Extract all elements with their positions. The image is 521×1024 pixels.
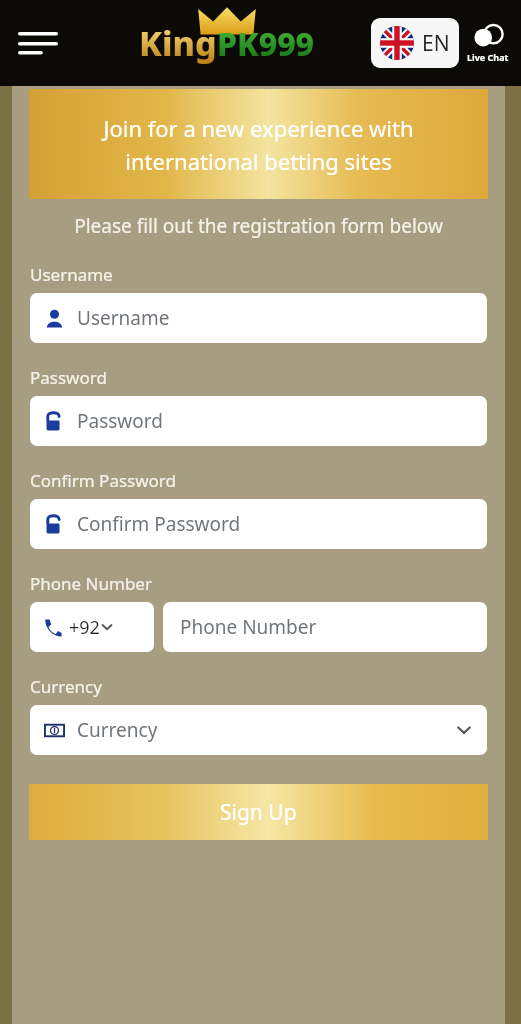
- button[interactable]: +92: [30, 602, 154, 652]
- button[interactable]: Currency: [30, 705, 487, 755]
- staticText: Currency: [77, 717, 158, 743]
- staticText: EN: [422, 29, 450, 58]
- staticText: Phone Number: [180, 614, 317, 640]
- staticText: Username: [30, 263, 113, 286]
- button[interactable]: EN: [371, 18, 459, 68]
- staticText: +92: [69, 615, 100, 640]
- staticText: Live Chat: [467, 51, 509, 63]
- button[interactable]: Live Chat: [467, 23, 509, 63]
- button[interactable]: Username: [30, 293, 487, 343]
- staticText: PK999: [217, 22, 315, 66]
- staticText: Join for a new experience with internati…: [37, 113, 480, 176]
- staticText: Please fill out the registration form be…: [72, 213, 445, 239]
- staticText: Confirm Password: [77, 511, 241, 537]
- button[interactable]: Password: [30, 396, 487, 446]
- staticText: Sign Up: [220, 798, 297, 827]
- staticText: Confirm Password: [30, 469, 176, 492]
- button[interactable]: Phone Number: [163, 602, 487, 652]
- button[interactable]: Confirm Password: [30, 499, 487, 549]
- staticText: Username: [77, 305, 170, 331]
- staticText: Password: [77, 408, 163, 434]
- staticText: King: [139, 20, 217, 66]
- staticText: Phone Number: [30, 572, 152, 595]
- button[interactable]: Sign Up: [29, 784, 488, 840]
- staticText: Currency: [30, 675, 102, 698]
- button[interactable]: Menu: [12, 17, 64, 69]
- staticText: Password: [30, 366, 107, 389]
